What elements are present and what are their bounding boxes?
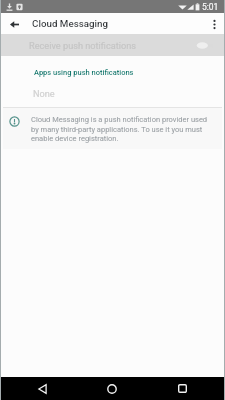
button[interactable]: More options: [205, 15, 223, 33]
staticText: Receive push notifications: [29, 40, 137, 51]
button[interactable]: Navigate up: [5, 15, 23, 33]
staticText: Cloud Messaging is a push notification p…: [31, 115, 208, 142]
staticText: Apps using push notifications: [34, 68, 134, 77]
button[interactable]: Recent apps: [170, 377, 194, 400]
staticText: None: [33, 88, 55, 99]
staticText: Cloud Messaging: [32, 18, 109, 29]
button[interactable]: Receive push notifications: [0, 34, 225, 56]
staticText: 5:01: [202, 2, 219, 12]
button[interactable]: Receive push notifications toggle: [196, 40, 214, 51]
button[interactable]: Back: [30, 377, 54, 400]
button[interactable]: Home: [100, 377, 124, 400]
